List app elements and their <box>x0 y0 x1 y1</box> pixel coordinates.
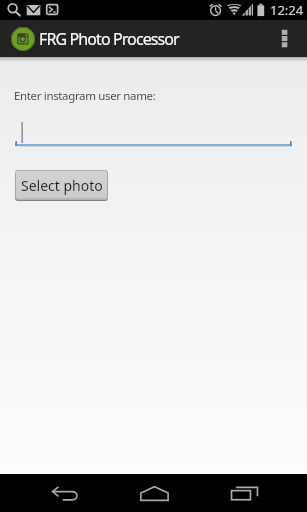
button[interactable]: Back <box>35 474 91 512</box>
button[interactable]: More options <box>267 20 307 57</box>
button[interactable] <box>0 117 307 149</box>
button[interactable]: Select photo <box>15 170 108 201</box>
button[interactable]: Home <box>126 474 182 512</box>
button[interactable]: Recent apps <box>216 474 272 512</box>
staticText: Enter instagram user name: <box>14 88 156 104</box>
staticText: Select photo <box>21 176 103 195</box>
staticText: FRG Photo Processor <box>39 28 179 50</box>
staticText: 12:24 <box>270 1 304 19</box>
